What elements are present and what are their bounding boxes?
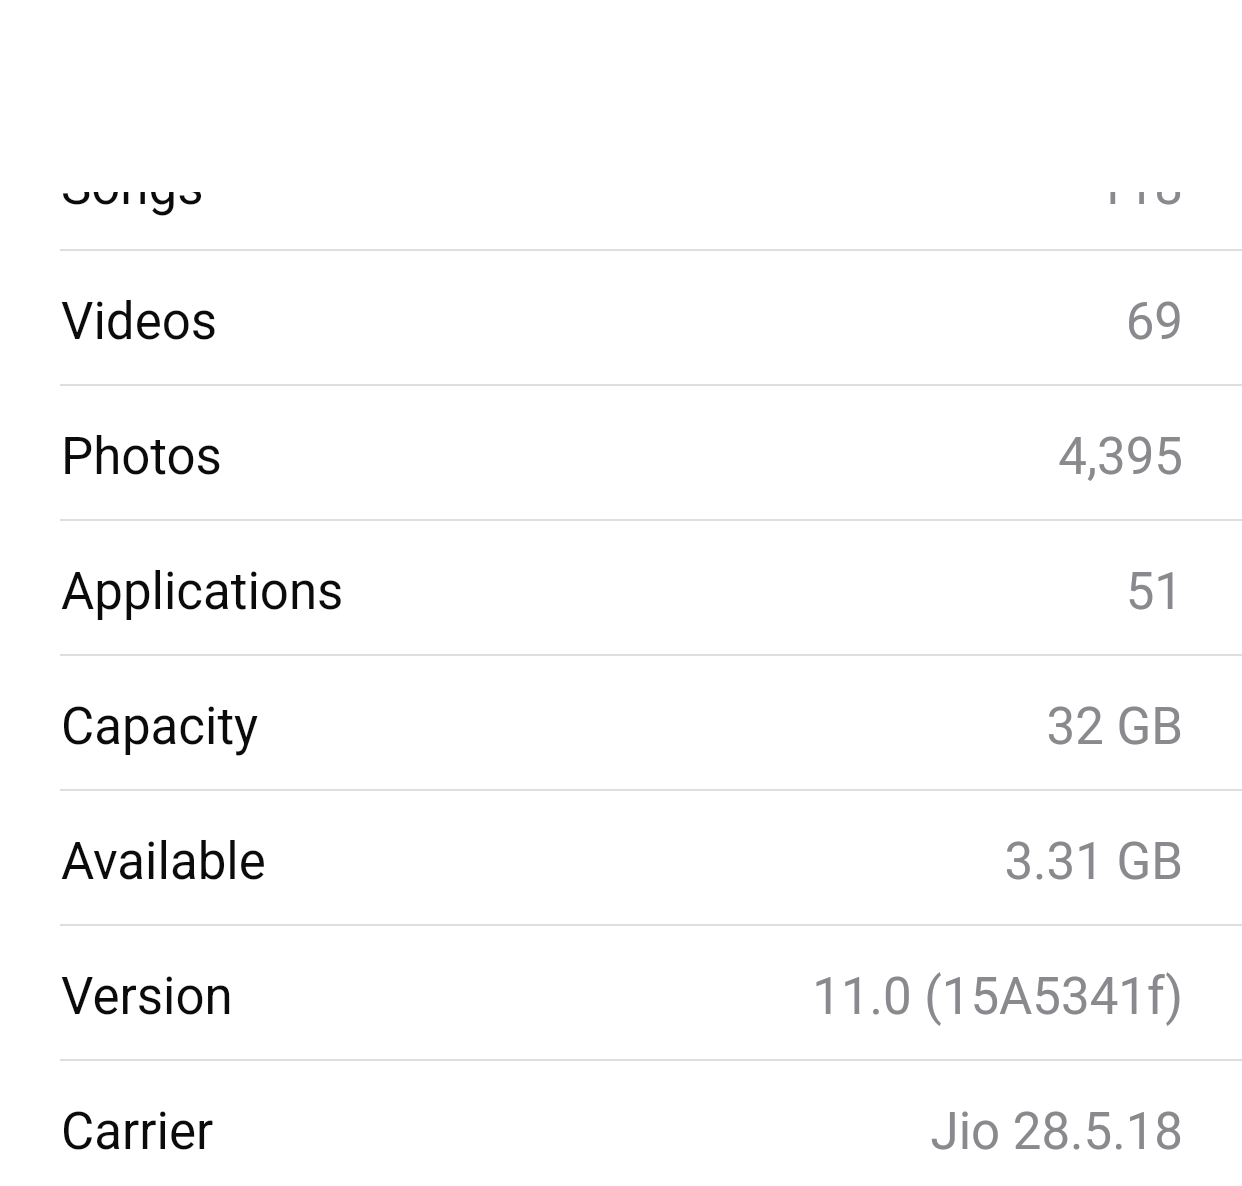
staticText: Jio 28.5.18 bbox=[930, 1102, 1183, 1162]
button[interactable]: Videos bbox=[0, 251, 1242, 386]
staticText: 3.31 GB bbox=[1004, 832, 1183, 892]
staticText: Videos bbox=[61, 292, 218, 352]
button[interactable]: Songs bbox=[0, 116, 1242, 251]
button[interactable]: Version bbox=[0, 926, 1242, 1061]
staticText: 69 bbox=[1125, 292, 1183, 352]
button[interactable]: Carrier bbox=[0, 1061, 1242, 1186]
staticText: 11.0 (15A5341f) bbox=[812, 967, 1183, 1027]
staticText: Version bbox=[61, 967, 233, 1027]
staticText: 118 bbox=[1097, 157, 1183, 217]
staticText: Capacity bbox=[61, 697, 259, 757]
button[interactable]: Photos bbox=[0, 386, 1242, 521]
staticText: Available bbox=[61, 832, 266, 892]
staticText: Songs bbox=[61, 157, 204, 217]
staticText: Carrier bbox=[61, 1102, 214, 1162]
staticText: 32 GB bbox=[1046, 697, 1183, 757]
button[interactable]: Applications bbox=[0, 521, 1242, 656]
staticText: Applications bbox=[61, 562, 344, 622]
staticText: 4,395 bbox=[1058, 427, 1183, 487]
button[interactable]: Capacity bbox=[0, 656, 1242, 791]
staticText: 51 bbox=[1125, 562, 1183, 622]
staticText: Photos bbox=[61, 427, 222, 487]
button[interactable]: Available bbox=[0, 791, 1242, 926]
